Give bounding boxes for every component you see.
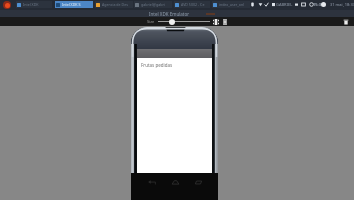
button[interactable]: Size slider <box>158 18 210 25</box>
staticText: 31 mai, 18:33 <box>330 2 354 7</box>
button[interactable]: gabriel@gabri <box>134 1 172 8</box>
staticText: AVD 5002 - Ce <box>181 2 205 7</box>
button[interactable]: Clock <box>308 0 315 8</box>
button[interactable]: Menu <box>3 1 11 9</box>
button[interactable]: Intel XDK <box>16 1 52 8</box>
button[interactable]: Display <box>300 0 307 8</box>
staticText: gabriel@gabri <box>141 2 165 7</box>
button[interactable]: Back <box>146 176 159 189</box>
staticText: Intel XDK <box>23 2 39 7</box>
staticText: Intel XDK Emulator <box>149 11 190 17</box>
button[interactable]: AVD 5002 - Ce <box>174 1 210 8</box>
button[interactable]: Volume <box>257 0 264 8</box>
staticText: Intel XDK S <box>62 2 81 7</box>
staticText: index_user_onl <box>219 2 245 7</box>
button[interactable]: index_user_onl <box>212 1 250 8</box>
button[interactable]: Intel XDK S <box>55 1 93 8</box>
button[interactable]: Printer <box>270 0 277 8</box>
button[interactable]: Recents <box>192 176 205 189</box>
button[interactable]: Network <box>293 0 300 8</box>
button[interactable]: Bluetooth <box>263 0 270 8</box>
staticText: Size <box>147 19 155 24</box>
button[interactable]: Portrait orientation <box>221 18 228 25</box>
staticText: Frutas pedidas <box>141 62 173 68</box>
staticText: 15:33 <box>313 2 324 7</box>
button[interactable]: Battery <box>249 0 256 8</box>
button[interactable]: Agencia de Des <box>95 1 133 8</box>
button[interactable]: User account <box>321 2 326 7</box>
button[interactable]: Delete <box>342 18 350 26</box>
staticText: Agencia de Des <box>102 2 128 7</box>
button[interactable]: Home <box>169 176 182 189</box>
staticText: GABRIEL <box>276 2 293 7</box>
button[interactable]: Landscape orientation <box>212 18 219 25</box>
